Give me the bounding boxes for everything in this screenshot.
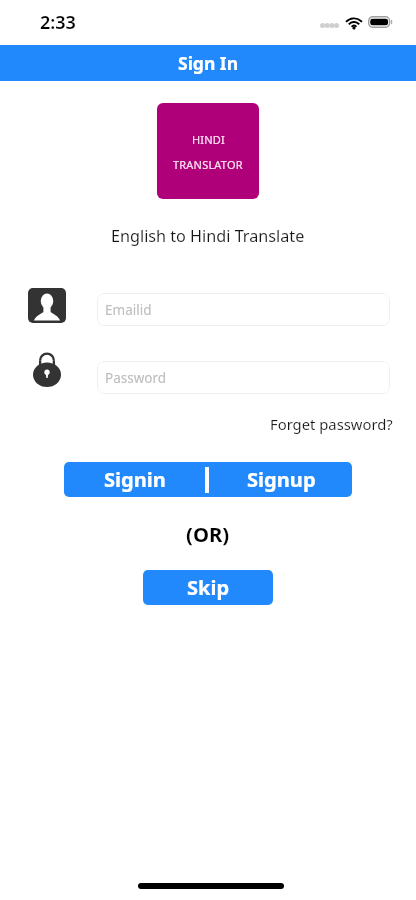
button[interactable]: Skip xyxy=(143,570,273,605)
staticText: English to Hindi Translate xyxy=(111,225,305,247)
button[interactable]: Emailid xyxy=(97,293,390,326)
staticText: HINDI xyxy=(192,132,225,147)
staticText: Skip xyxy=(187,574,230,601)
staticText: Password xyxy=(105,369,167,387)
staticText: Signin xyxy=(104,466,166,493)
button[interactable]: Signup xyxy=(210,462,352,497)
staticText: Signup xyxy=(247,466,316,493)
staticText: Sign In xyxy=(178,51,239,75)
button[interactable]: Password xyxy=(33,352,61,387)
button[interactable]: Sign In xyxy=(0,45,416,81)
button[interactable]: Password xyxy=(97,361,390,394)
button[interactable]: Signin xyxy=(64,462,206,497)
staticText: (OR) xyxy=(186,520,230,548)
staticText: 2:33 xyxy=(40,10,76,35)
button[interactable]: Email xyxy=(28,288,66,323)
staticText: Forget password? xyxy=(270,414,393,434)
staticText: Emailid xyxy=(105,301,152,319)
button[interactable]: Forget password? xyxy=(270,414,393,434)
staticText: TRANSLATOR xyxy=(173,157,243,172)
